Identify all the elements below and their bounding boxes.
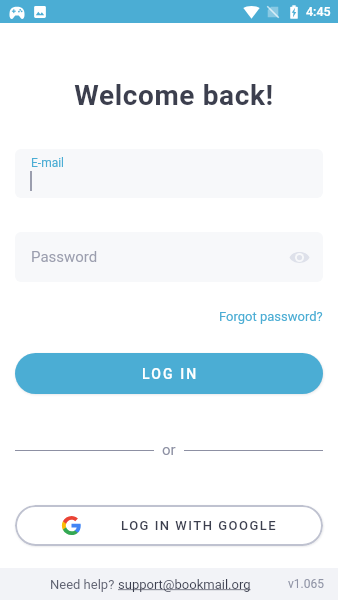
staticText: E-mail <box>31 156 65 170</box>
staticText: 4:45 <box>306 4 331 19</box>
staticText: LOG IN WITH GOOGLE <box>121 518 278 533</box>
button[interactable]: E-mail <box>15 149 323 198</box>
button[interactable]: LOG IN <box>15 353 323 394</box>
staticText: Password <box>31 248 98 266</box>
staticText: or <box>162 441 176 459</box>
button[interactable]: Password <box>15 232 323 282</box>
staticText: LOG IN <box>142 366 199 382</box>
button[interactable]: support@bookmail.org <box>118 577 251 592</box>
staticText: v1.065 <box>288 577 324 591</box>
staticText: Welcome back! <box>5 79 338 112</box>
button[interactable]: Show password <box>284 242 314 272</box>
staticText: Need help? <box>50 577 118 592</box>
button[interactable]: Forgot password? <box>204 305 338 328</box>
button[interactable]: LOG IN WITH GOOGLE <box>15 505 323 546</box>
